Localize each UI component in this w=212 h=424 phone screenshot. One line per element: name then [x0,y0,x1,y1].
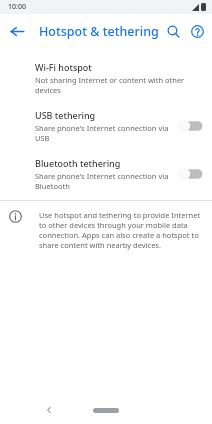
staticText: Share phone's Internet connection via US… [35,123,172,143]
button[interactable]: Toggle [178,165,204,183]
staticText: Not sharing Internet or content with oth… [35,75,198,95]
button[interactable]: Back [40,401,58,419]
button[interactable]: Toggle [178,117,204,135]
button[interactable]: Home [91,403,121,417]
button[interactable]: Wi-Fi hotspot [0,54,212,102]
staticText: Hotspot & tethering [39,23,159,40]
button[interactable]: Bluetooth tethering [0,150,212,198]
staticText: USB tethering [35,109,96,121]
button[interactable]: Help [187,17,208,45]
button[interactable]: USB tethering [0,102,212,150]
staticText: Wi-Fi hotspot [35,61,92,73]
button[interactable]: Back [0,14,34,48]
staticText: Share phone's Internet connection via Bl… [35,171,172,191]
button[interactable]: Search [159,17,187,45]
staticText: Bluetooth tethering [35,157,121,169]
staticText: 10:00 [8,2,26,12]
staticText: Use hotspot and tethering to provide Int… [39,210,202,250]
